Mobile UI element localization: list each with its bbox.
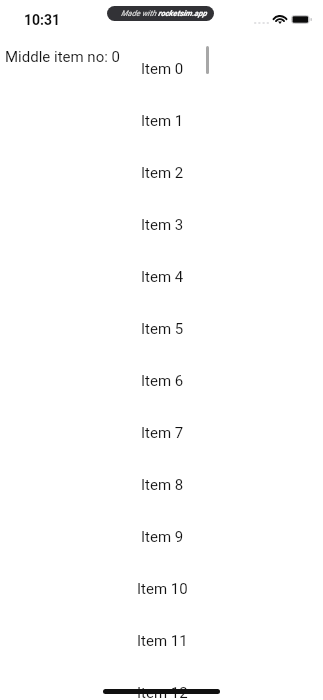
button[interactable]: Made with — [107, 6, 214, 21]
staticText: Item 1 — [141, 112, 184, 130]
button[interactable]: Item 3 — [0, 199, 323, 251]
button[interactable]: Item 6 — [0, 355, 323, 407]
staticText: Item 12 — [137, 684, 188, 700]
staticText: Item 4 — [141, 268, 184, 286]
button[interactable]: Item 11 — [0, 615, 323, 667]
button[interactable]: Item 0 — [0, 43, 323, 95]
staticText: Item 10 — [137, 580, 188, 598]
staticText: Item 3 — [141, 216, 184, 234]
staticText: Item 6 — [141, 372, 184, 390]
staticText: Item 9 — [141, 528, 184, 546]
button[interactable]: Item 9 — [0, 511, 323, 563]
staticText: Item 5 — [141, 320, 184, 338]
staticText: Item 8 — [141, 476, 184, 494]
other: Wi-Fi — [273, 14, 287, 24]
button[interactable]: Item 2 — [0, 147, 323, 199]
other: Battery — [291, 15, 312, 24]
button[interactable]: Item 8 — [0, 459, 323, 511]
staticText: Item 7 — [141, 424, 184, 442]
button[interactable]: Item 10 — [0, 563, 323, 615]
staticText: rocketsim.app — [158, 9, 207, 18]
other: Cellular signal — [254, 22, 269, 24]
button[interactable]: Item 12 — [0, 667, 323, 700]
button[interactable]: Item 5 — [0, 303, 323, 355]
staticText: Item 0 — [141, 60, 184, 78]
staticText: Item 11 — [137, 632, 188, 650]
button[interactable]: Item 4 — [0, 251, 323, 303]
button[interactable]: Item 1 — [0, 95, 323, 147]
staticText: Made with — [121, 9, 158, 18]
button[interactable]: Item 7 — [0, 407, 323, 459]
staticText: 10:31 — [24, 12, 61, 28]
staticText: Item 2 — [141, 164, 184, 182]
staticText: Middle item no: 0 — [5, 48, 120, 66]
